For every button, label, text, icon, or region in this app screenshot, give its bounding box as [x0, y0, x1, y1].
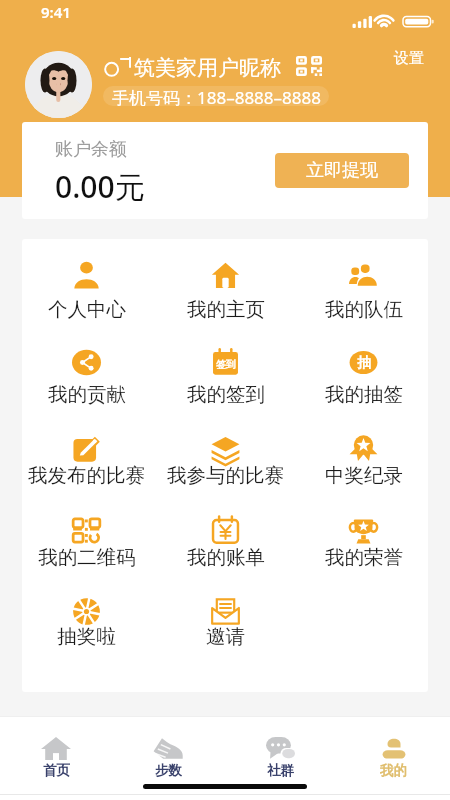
- button[interactable]: 邀请: [158, 585, 293, 659]
- button[interactable]: 个人中心: [22, 249, 154, 323]
- button[interactable]: 立即提现: [275, 153, 409, 188]
- staticText: 我参与的比赛: [167, 463, 284, 488]
- staticText: 我的签到: [187, 382, 265, 407]
- button[interactable]: 我的主页: [158, 249, 293, 323]
- staticText: 9:41: [41, 2, 71, 22]
- staticText: 我的贡献: [48, 382, 126, 407]
- staticText: 个人中心: [48, 297, 126, 322]
- button[interactable]: 抽奖啦: [22, 585, 154, 659]
- staticText: 筑美家用户昵称: [134, 55, 281, 81]
- staticText: 抽: [357, 354, 371, 372]
- staticText: 立即提现: [306, 159, 378, 182]
- button[interactable]: 设置: [386, 44, 432, 73]
- staticText: 邀请: [206, 624, 245, 649]
- staticText: 手机号码：188–8888–8888: [112, 86, 321, 106]
- staticText: 我的账单: [187, 545, 265, 570]
- staticText: 中奖纪录: [325, 463, 403, 488]
- button[interactable]: 我的二维码: [22, 504, 154, 578]
- button[interactable]: 社群: [224, 717, 337, 778]
- button[interactable]: 首页: [0, 717, 112, 778]
- staticText: 签到: [216, 358, 236, 371]
- staticText: 社群: [267, 762, 294, 778]
- button[interactable]: Avatar: [25, 51, 92, 118]
- staticText: 我的队伍: [325, 297, 403, 322]
- staticText: 我的主页: [187, 297, 265, 322]
- staticText: 设置: [394, 49, 424, 68]
- button[interactable]: 我的账单: [158, 504, 293, 578]
- staticText: 账户余额: [55, 138, 127, 161]
- staticText: 首页: [43, 762, 70, 778]
- button[interactable]: 签到: [158, 336, 293, 410]
- button[interactable]: 我的贡献: [22, 336, 154, 410]
- button[interactable]: 我的: [337, 717, 450, 778]
- button[interactable]: 我发布的比赛: [22, 423, 154, 497]
- staticText: 我发布的比赛: [28, 463, 145, 488]
- staticText: 步数: [155, 762, 182, 778]
- staticText: 我的二维码: [38, 545, 136, 570]
- button[interactable]: 我参与的比赛: [158, 423, 293, 497]
- button[interactable]: 中奖纪录: [296, 423, 428, 497]
- staticText: 我的抽签: [325, 382, 403, 407]
- staticText: 0.00元: [55, 166, 145, 207]
- staticText: 抽奖啦: [57, 624, 116, 649]
- button[interactable]: My QR code: [294, 54, 324, 78]
- staticText: 我的荣誉: [325, 545, 403, 570]
- button[interactable]: 我的队伍: [296, 249, 428, 323]
- button[interactable]: 步数: [112, 717, 224, 778]
- button[interactable]: 我的荣誉: [296, 504, 428, 578]
- other: Gender male: [105, 58, 131, 76]
- button[interactable]: 抽: [296, 336, 428, 410]
- staticText: 我的: [380, 762, 407, 778]
